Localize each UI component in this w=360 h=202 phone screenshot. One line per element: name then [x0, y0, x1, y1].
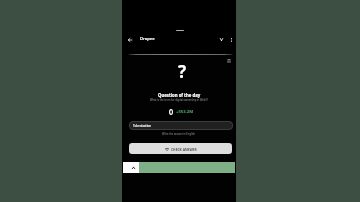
staticText: Question of the day	[158, 92, 201, 98]
button[interactable]: Collapse	[216, 34, 227, 45]
staticText: ?	[178, 60, 187, 78]
staticText: Dropee	[140, 36, 155, 42]
staticText: Tokenization	[133, 124, 152, 128]
staticText: Write the answer in English	[162, 132, 196, 136]
button[interactable]: Back	[124, 34, 135, 45]
staticText: What is the term for digital ownership i…	[150, 98, 208, 102]
button[interactable]: CHECK ANSWER	[129, 143, 232, 154]
staticText: CHECK ANSWER	[171, 147, 197, 151]
button[interactable]: More options	[226, 34, 237, 45]
staticText: +553.2M	[176, 109, 194, 115]
button[interactable]: Leaderboard	[225, 57, 233, 65]
button[interactable]: Tokenization	[129, 121, 233, 130]
button[interactable]: Expand	[123, 162, 139, 173]
